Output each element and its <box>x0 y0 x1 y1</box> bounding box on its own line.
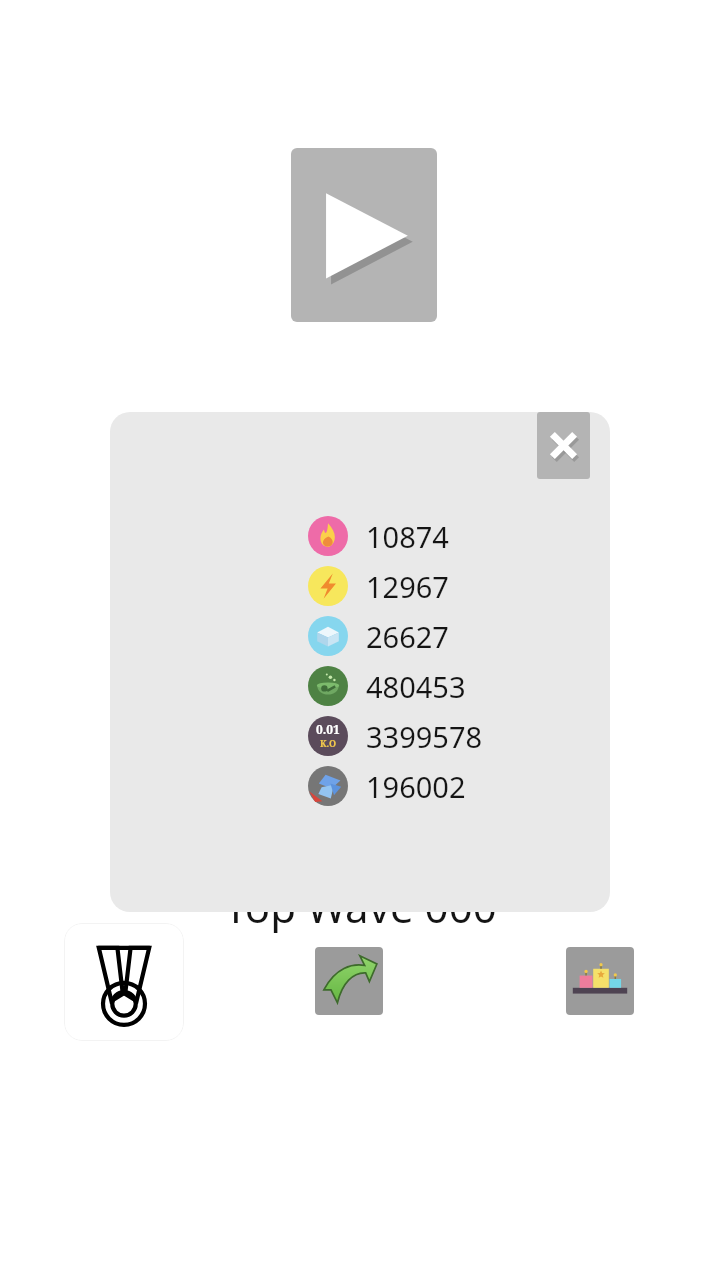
staticText: 480453 <box>366 667 466 706</box>
button[interactable]: Shop <box>566 947 634 1015</box>
staticText: 3399578 <box>366 717 483 756</box>
staticText: 12967 <box>366 567 449 606</box>
button[interactable]: Play <box>291 148 437 322</box>
button[interactable]: Share <box>315 947 383 1015</box>
staticText: 26627 <box>366 617 449 656</box>
staticText: 196002 <box>366 767 466 806</box>
staticText: K.O <box>320 737 337 749</box>
staticText: Top Wave 000 <box>224 878 497 935</box>
button[interactable]: Achievements <box>64 923 184 1041</box>
staticText: 0.01 <box>316 721 340 737</box>
staticText: 10874 <box>366 517 449 556</box>
button[interactable]: Close <box>537 412 590 479</box>
